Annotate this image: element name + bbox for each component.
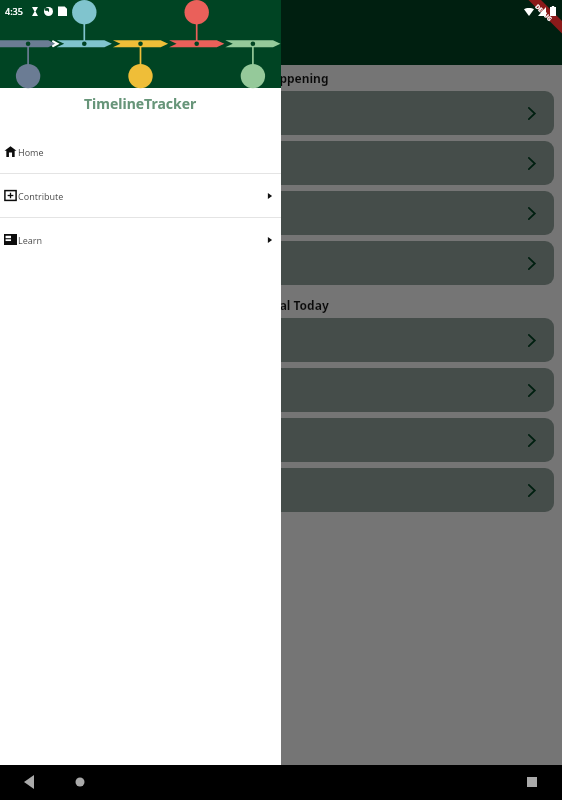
button[interactable]: [8, 468, 554, 512]
staticText: Historical Today: [233, 297, 329, 313]
staticText: 4:35: [5, 5, 23, 17]
button[interactable]: Learn: [0, 218, 281, 261]
staticText: Home: [18, 146, 44, 158]
button[interactable]: Contribute: [0, 174, 281, 217]
staticText: DEBUG: [533, 3, 554, 23]
staticText: TimelineTracker: [84, 94, 197, 113]
button[interactable]: [8, 241, 554, 285]
staticText: What's Happening: [219, 70, 329, 86]
button[interactable]: [8, 368, 554, 412]
button[interactable]: [8, 141, 554, 185]
button[interactable]: [8, 418, 554, 462]
button[interactable]: Home: [0, 130, 281, 173]
staticText: Contribute: [18, 190, 64, 202]
button[interactable]: [8, 91, 554, 135]
button[interactable]: [8, 191, 554, 235]
staticText: Learn: [18, 234, 43, 246]
button[interactable]: [8, 318, 554, 362]
